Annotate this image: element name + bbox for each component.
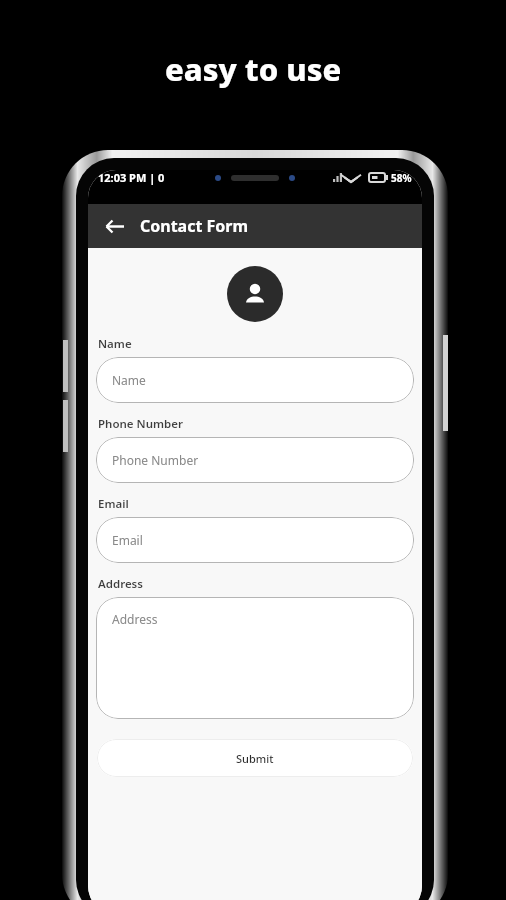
staticText: Name (112, 372, 146, 388)
staticText: Phone Number (112, 452, 199, 468)
staticText: 12:03 PM | 0 (98, 170, 165, 185)
button[interactable]: Phone Number (96, 437, 414, 483)
staticText: Email (98, 496, 129, 512)
button[interactable]: Profile photo (227, 266, 283, 322)
staticText: Name (98, 336, 132, 352)
staticText: easy to use (165, 48, 342, 90)
button[interactable]: Submit (97, 739, 413, 777)
button[interactable]: Back (96, 208, 132, 244)
button[interactable]: Name (96, 357, 414, 403)
staticText: 58% (391, 171, 412, 185)
staticText: Submit (236, 751, 274, 766)
staticText: Phone Number (98, 416, 183, 432)
staticText: Address (112, 611, 158, 627)
staticText: Address (98, 576, 143, 592)
staticText: Email (112, 532, 143, 548)
staticText: Contact Form (140, 215, 249, 237)
button[interactable]: Email (96, 517, 414, 563)
button[interactable]: Address (96, 597, 414, 719)
